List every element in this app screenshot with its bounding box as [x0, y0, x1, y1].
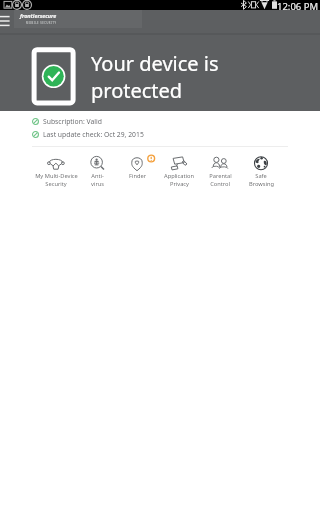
staticText: My Multi-Device: [35, 172, 78, 180]
staticText: Anti-: [91, 172, 104, 180]
staticText: MOBILE SECURITY: [26, 21, 57, 25]
button[interactable]: Parental Control: [193, 147, 247, 189]
button[interactable]: Anti- virus: [70, 147, 124, 189]
button[interactable]: Application Privacy: [152, 147, 206, 189]
staticText: virus: [91, 180, 104, 188]
staticText: Safe: [255, 172, 267, 180]
staticText: Last update check: Oct 29, 2015: [43, 130, 144, 139]
staticText: Privacy: [170, 180, 189, 188]
button[interactable]: Finder: [110, 147, 164, 189]
button[interactable]: My Multi-Device Security: [29, 147, 83, 189]
button[interactable]: Open navigation menu: [0, 10, 13, 33]
staticText: frontiersecure: [20, 12, 57, 19]
staticText: Parental: [209, 172, 232, 180]
button[interactable]: Safe Browsing: [234, 147, 288, 189]
staticText: 12:06 PM: [277, 0, 319, 10]
staticText: protected: [91, 77, 183, 104]
staticText: Browsing: [249, 180, 274, 188]
staticText: Your device is: [91, 50, 219, 77]
staticText: Subscription: Valid: [43, 117, 102, 126]
staticText: Security: [45, 180, 67, 188]
staticText: Application: [164, 172, 194, 180]
staticText: Finder: [129, 172, 146, 180]
staticText: Control: [210, 180, 230, 188]
